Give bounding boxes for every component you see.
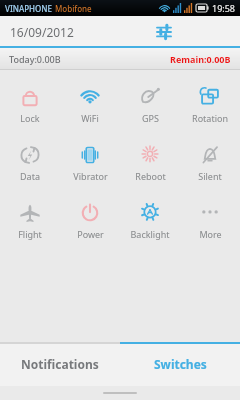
staticText: Power [77, 228, 104, 240]
button[interactable]: Silent [180, 134, 240, 192]
button[interactable]: Notifications [0, 342, 120, 386]
staticText: Flight [18, 228, 42, 240]
staticText: Notifications [21, 356, 99, 372]
staticText: Rotation [192, 112, 228, 124]
staticText: Lock [20, 112, 40, 124]
staticText: Reboot [135, 170, 166, 182]
staticText: WiFi [81, 112, 99, 124]
button[interactable]: Backlight [120, 192, 180, 250]
staticText: Remain:0.00B [170, 53, 231, 65]
button[interactable]: Power [60, 192, 120, 250]
button[interactable]: More [180, 192, 240, 250]
button[interactable]: Reboot [120, 134, 180, 192]
button[interactable]: Vibrator [60, 134, 120, 192]
button[interactable]: Switches [120, 342, 240, 386]
staticText: Vibrator [73, 170, 108, 182]
staticText: 16/09/2012 [10, 24, 74, 40]
staticText: Data [20, 170, 40, 182]
button[interactable]: WiFi [60, 76, 120, 134]
staticText: Today:0.00B [9, 53, 61, 65]
button[interactable]: Flight [0, 192, 60, 250]
staticText: 19:58 [212, 2, 236, 14]
staticText: Switches [154, 356, 207, 372]
button[interactable]: Lock [0, 76, 60, 134]
button[interactable]: Settings [150, 18, 178, 46]
staticText: Silent [198, 170, 222, 182]
staticText: More [199, 228, 222, 240]
staticText: Mobifone [55, 3, 92, 14]
staticText: VINAPHONE [5, 3, 52, 14]
staticText: GPS [142, 112, 159, 124]
button[interactable]: Rotation [180, 76, 240, 134]
button[interactable]: Data [0, 134, 60, 192]
button[interactable]: GPS [120, 76, 180, 134]
staticText: Backlight [130, 228, 170, 240]
